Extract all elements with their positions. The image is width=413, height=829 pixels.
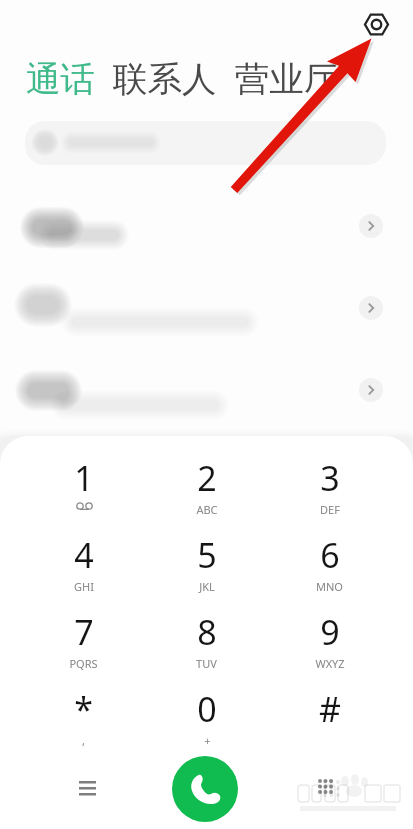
button[interactable]: 5 [145, 530, 268, 607]
button[interactable]: 通话 [26, 58, 95, 101]
staticText: JKL [199, 579, 215, 594]
button[interactable]: Details [0, 186, 413, 268]
staticText: WXYZ [315, 656, 345, 671]
button[interactable]: Details [0, 268, 413, 350]
button[interactable]: 6 [268, 530, 391, 607]
button[interactable]: 9 [268, 607, 391, 684]
staticText: GHI [74, 579, 94, 594]
staticText: 1 [74, 455, 94, 501]
button[interactable]: Settings [364, 12, 389, 37]
button[interactable]: * [22, 684, 145, 761]
staticText: TUV [196, 656, 217, 671]
button[interactable]: 8 [145, 607, 268, 684]
button[interactable]: # [268, 684, 391, 761]
button[interactable]: 营业厅 [235, 58, 339, 101]
button[interactable]: 联系人 [113, 58, 217, 101]
staticText: 3 [320, 455, 340, 501]
staticText: 5 [197, 532, 217, 578]
button[interactable] [25, 121, 386, 165]
button[interactable]: 4 [22, 530, 145, 607]
button[interactable]: Details [359, 296, 383, 320]
staticText: MNO [316, 579, 343, 594]
staticText: , [82, 733, 85, 748]
staticText: DEF [320, 502, 340, 517]
button[interactable]: 3 [268, 453, 391, 530]
button[interactable]: Call [172, 756, 238, 822]
button[interactable]: 2 [145, 453, 268, 530]
staticText: 0 [197, 686, 217, 732]
staticText: 8 [197, 609, 217, 655]
button[interactable]: 7 [22, 607, 145, 684]
button[interactable]: Keypad [308, 769, 340, 801]
staticText: * [74, 686, 93, 732]
button[interactable]: Menu [71, 772, 103, 804]
staticText: 2 [197, 455, 217, 501]
button[interactable]: 0 [145, 684, 268, 761]
staticText: # [319, 686, 341, 732]
button[interactable]: 1 [22, 453, 145, 530]
staticText: 7 [74, 609, 94, 655]
button[interactable]: Details [359, 378, 383, 402]
staticText: 6 [320, 532, 340, 578]
button[interactable]: Details [0, 350, 413, 432]
staticText: 4 [74, 532, 94, 578]
staticText: + [204, 733, 211, 748]
staticText: ABC [196, 502, 218, 517]
button[interactable]: Details [359, 214, 383, 238]
staticText: PQRS [69, 656, 98, 671]
staticText: 9 [320, 609, 340, 655]
